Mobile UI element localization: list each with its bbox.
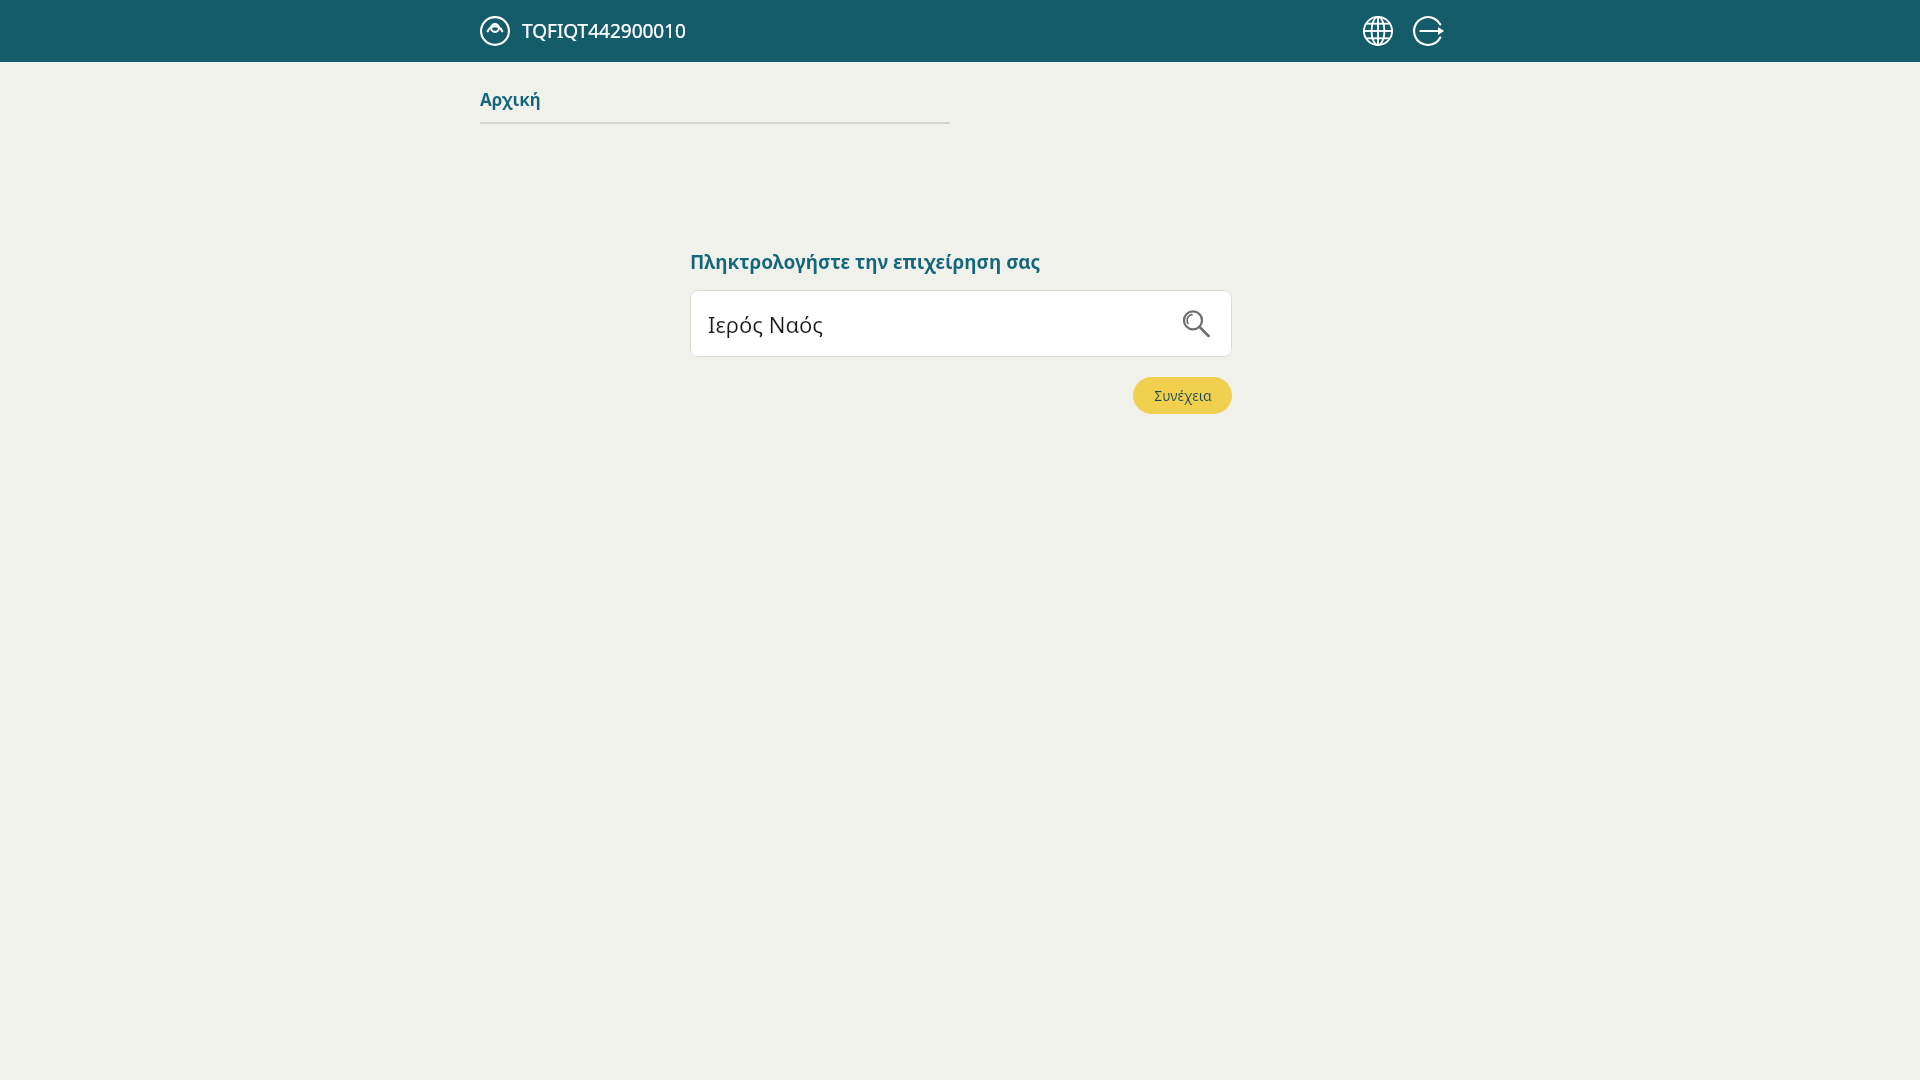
staticText: TQFIQT442900010 xyxy=(522,18,686,44)
staticText: Συνέχεια xyxy=(1154,386,1212,405)
button[interactable]: TQFIQT442900010 xyxy=(480,16,686,46)
staticText: Ιερός Ναός xyxy=(708,309,1178,339)
button[interactable]: Language xyxy=(1356,9,1400,53)
button[interactable]: Logout xyxy=(1406,9,1450,53)
button[interactable]: Συνέχεια xyxy=(1133,377,1232,414)
staticText: Αρχική xyxy=(480,88,541,111)
other: Search xyxy=(1178,306,1214,342)
button[interactable]: Ιερός Ναός xyxy=(690,290,1232,357)
staticText: Πληκτρολογήστε την επιχείρηση σας xyxy=(690,249,1041,275)
button[interactable]: Αρχική xyxy=(480,88,950,111)
